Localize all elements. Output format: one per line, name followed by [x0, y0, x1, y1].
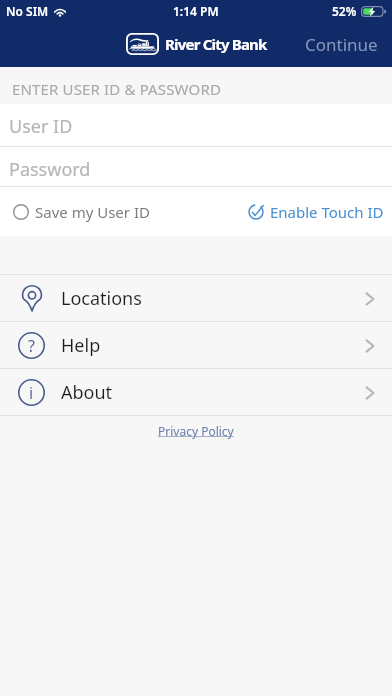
- button[interactable]: Save my User ID: [0, 187, 160, 236]
- staticText: Continue: [305, 33, 378, 56]
- staticText: River City Bank: [165, 34, 267, 54]
- other: Open: [365, 386, 375, 400]
- other: Open: [365, 292, 375, 306]
- staticText: 52%: [332, 3, 357, 19]
- other: River City Bank logo: [126, 33, 159, 55]
- button[interactable]: Enable Touch ID: [238, 187, 392, 236]
- staticText: Save my User ID: [35, 202, 150, 222]
- staticText: Locations: [61, 286, 142, 311]
- staticText: No SIM: [6, 3, 49, 19]
- staticText: ?: [28, 335, 35, 357]
- button[interactable]: ?: [0, 322, 392, 368]
- staticText: Help: [61, 333, 101, 358]
- staticText: User ID: [9, 114, 73, 139]
- button[interactable]: Password: [0, 147, 392, 186]
- staticText: 1:14 PM: [173, 3, 219, 19]
- staticText: Password: [9, 157, 91, 182]
- button[interactable]: i: [0, 369, 392, 415]
- other: Open: [365, 339, 375, 353]
- staticText: Enable Touch ID: [270, 202, 384, 222]
- button[interactable]: Privacy Policy: [158, 423, 234, 439]
- staticText: About: [61, 380, 113, 405]
- button[interactable]: Locations: [0, 275, 392, 321]
- button[interactable]: Continue: [291, 25, 392, 64]
- staticText: i: [29, 382, 34, 404]
- staticText: ENTER USER ID & PASSWORD: [12, 79, 222, 99]
- button[interactable]: User ID: [0, 104, 392, 146]
